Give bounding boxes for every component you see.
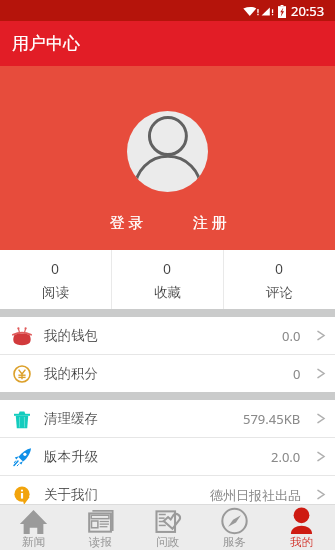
button[interactable]: 我的钱包 [0,317,335,354]
staticText: 20:53 [291,2,325,20]
staticText: 0 [293,365,301,383]
staticText: 清理缓存 [44,410,98,427]
staticText: 读报 [89,535,112,549]
staticText: 评论 [266,284,293,301]
button[interactable]: 版本升级 [0,438,335,475]
staticText: 版本升级 [44,448,98,465]
staticText: 注册 [191,214,228,233]
button[interactable]: 关于我们 [0,476,335,513]
button[interactable]: 我的积分 [0,355,335,392]
staticText: 我的 [290,535,313,549]
staticText: 0 [275,259,284,278]
staticText: 0.0 [282,327,301,345]
button[interactable]: 清理缓存 [0,400,335,437]
button[interactable]: 0 [224,250,335,309]
staticText: 问政 [156,535,179,549]
staticText: 2.0.0 [271,448,301,466]
button[interactable]: 读报 [67,505,134,550]
staticText: 关于我们 [44,486,98,503]
staticText: 我的钱包 [44,327,98,344]
button[interactable]: 头像 [127,111,208,192]
button[interactable]: 问政 [134,505,201,550]
button[interactable]: 我的 [268,505,335,550]
button[interactable]: 服务 [201,505,268,550]
staticText: 579.45KB [243,410,301,428]
staticText: 登录 [108,214,145,233]
staticText: 新闻 [22,535,45,549]
staticText: 阅读 [42,284,69,301]
button[interactable]: 0 [112,250,223,309]
staticText: 0 [51,259,60,278]
staticText: 收藏 [154,284,181,301]
button[interactable]: 0 [0,250,111,309]
staticText: 我的积分 [44,365,98,382]
button[interactable]: 新闻 [0,505,67,550]
staticText: 用户中心 [12,33,80,54]
staticText: 0 [163,259,172,278]
staticText: 德州日报社出品 [210,487,301,503]
button[interactable]: 登录 [97,209,156,238]
button[interactable]: 注册 [180,209,239,238]
staticText: 服务 [223,535,246,549]
